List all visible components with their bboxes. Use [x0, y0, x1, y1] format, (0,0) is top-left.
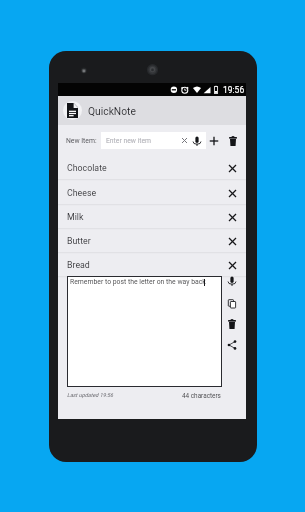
button[interactable]: Milk — [58, 205, 246, 229]
staticText: Cheese — [67, 188, 97, 198]
button[interactable]: Remove Chocolate — [225, 161, 239, 175]
button[interactable]: Remember to post the letter on the way b… — [67, 276, 222, 387]
staticText: QuickNote — [88, 105, 136, 117]
button[interactable]: Voice note — [224, 273, 240, 289]
staticText: 44 characters — [182, 392, 221, 400]
button[interactable]: Remove Butter — [225, 234, 239, 248]
button[interactable]: Cheese — [58, 181, 246, 205]
button[interactable]: QuickNote — [58, 96, 246, 125]
staticText: New Item: — [66, 137, 97, 145]
button[interactable]: Enter new item — [101, 132, 206, 149]
button[interactable]: Butter — [58, 229, 246, 253]
staticText: Chocolate — [67, 163, 107, 173]
staticText: Butter — [67, 236, 91, 246]
staticText: 19:56 — [223, 85, 245, 95]
button[interactable]: Delete all items — [226, 134, 240, 148]
staticText: Last updated 19:56 — [67, 392, 114, 398]
button[interactable]: Bread — [58, 253, 246, 277]
staticText: Remember to post the letter on the way b… — [70, 278, 206, 286]
button[interactable]: Add item — [207, 134, 221, 148]
button[interactable]: Clear text — [179, 135, 190, 146]
button[interactable]: Share note — [224, 337, 240, 353]
button[interactable]: Remove Cheese — [225, 186, 239, 200]
button[interactable]: Chocolate — [58, 156, 246, 180]
staticText: Bread — [67, 260, 90, 270]
button[interactable]: Delete note — [224, 316, 240, 332]
staticText: Enter new item — [106, 137, 152, 145]
button[interactable]: Voice input — [190, 134, 204, 148]
button[interactable]: Remove Milk — [225, 210, 239, 224]
staticText: Milk — [67, 212, 84, 222]
button[interactable]: Copy note — [224, 296, 240, 312]
button[interactable]: Remove Bread — [225, 258, 239, 272]
